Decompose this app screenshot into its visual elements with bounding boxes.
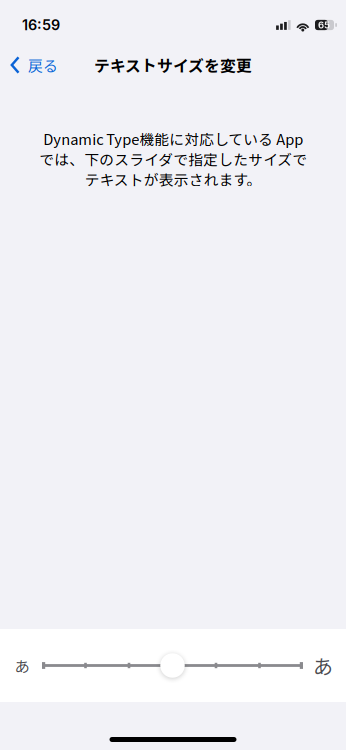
staticText: 65 (318, 19, 330, 31)
staticText: 戻る (28, 54, 58, 76)
button[interactable]: Smaller text (6, 643, 38, 687)
staticText: あ (313, 651, 333, 680)
staticText: 16:59 (22, 16, 60, 34)
button[interactable]: 戻る (0, 45, 68, 85)
staticText: あ (14, 654, 29, 677)
staticText: Dynamic Type機能に対応している App では、下のスライダで指定した… (39, 128, 307, 190)
staticText: テキストサイズを変更 (94, 54, 252, 76)
button[interactable]: Larger text (307, 643, 339, 687)
